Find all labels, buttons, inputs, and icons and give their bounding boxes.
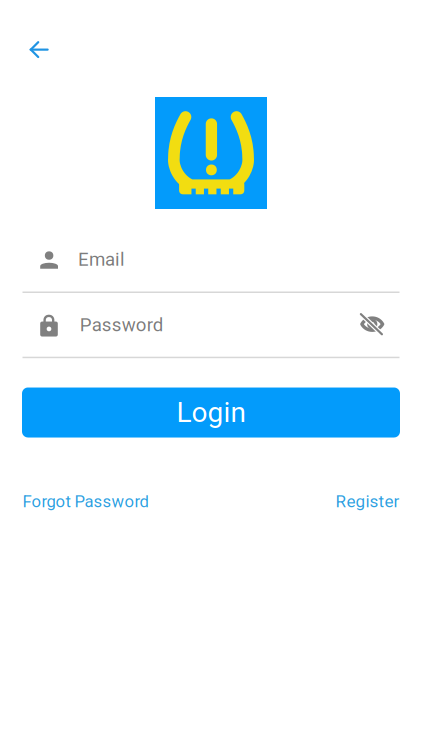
button[interactable]: Show password — [360, 314, 399, 336]
button[interactable]: Register — [335, 491, 399, 511]
staticText: Password — [80, 314, 164, 336]
button[interactable]: Back — [0, 0, 62, 72]
staticText: Forgot Password — [22, 492, 148, 511]
staticText: Login — [176, 396, 245, 429]
staticText: Email — [78, 248, 125, 270]
button[interactable]: Forgot Password — [22, 492, 148, 511]
staticText: Register — [335, 491, 399, 511]
button[interactable]: Login — [22, 387, 400, 437]
